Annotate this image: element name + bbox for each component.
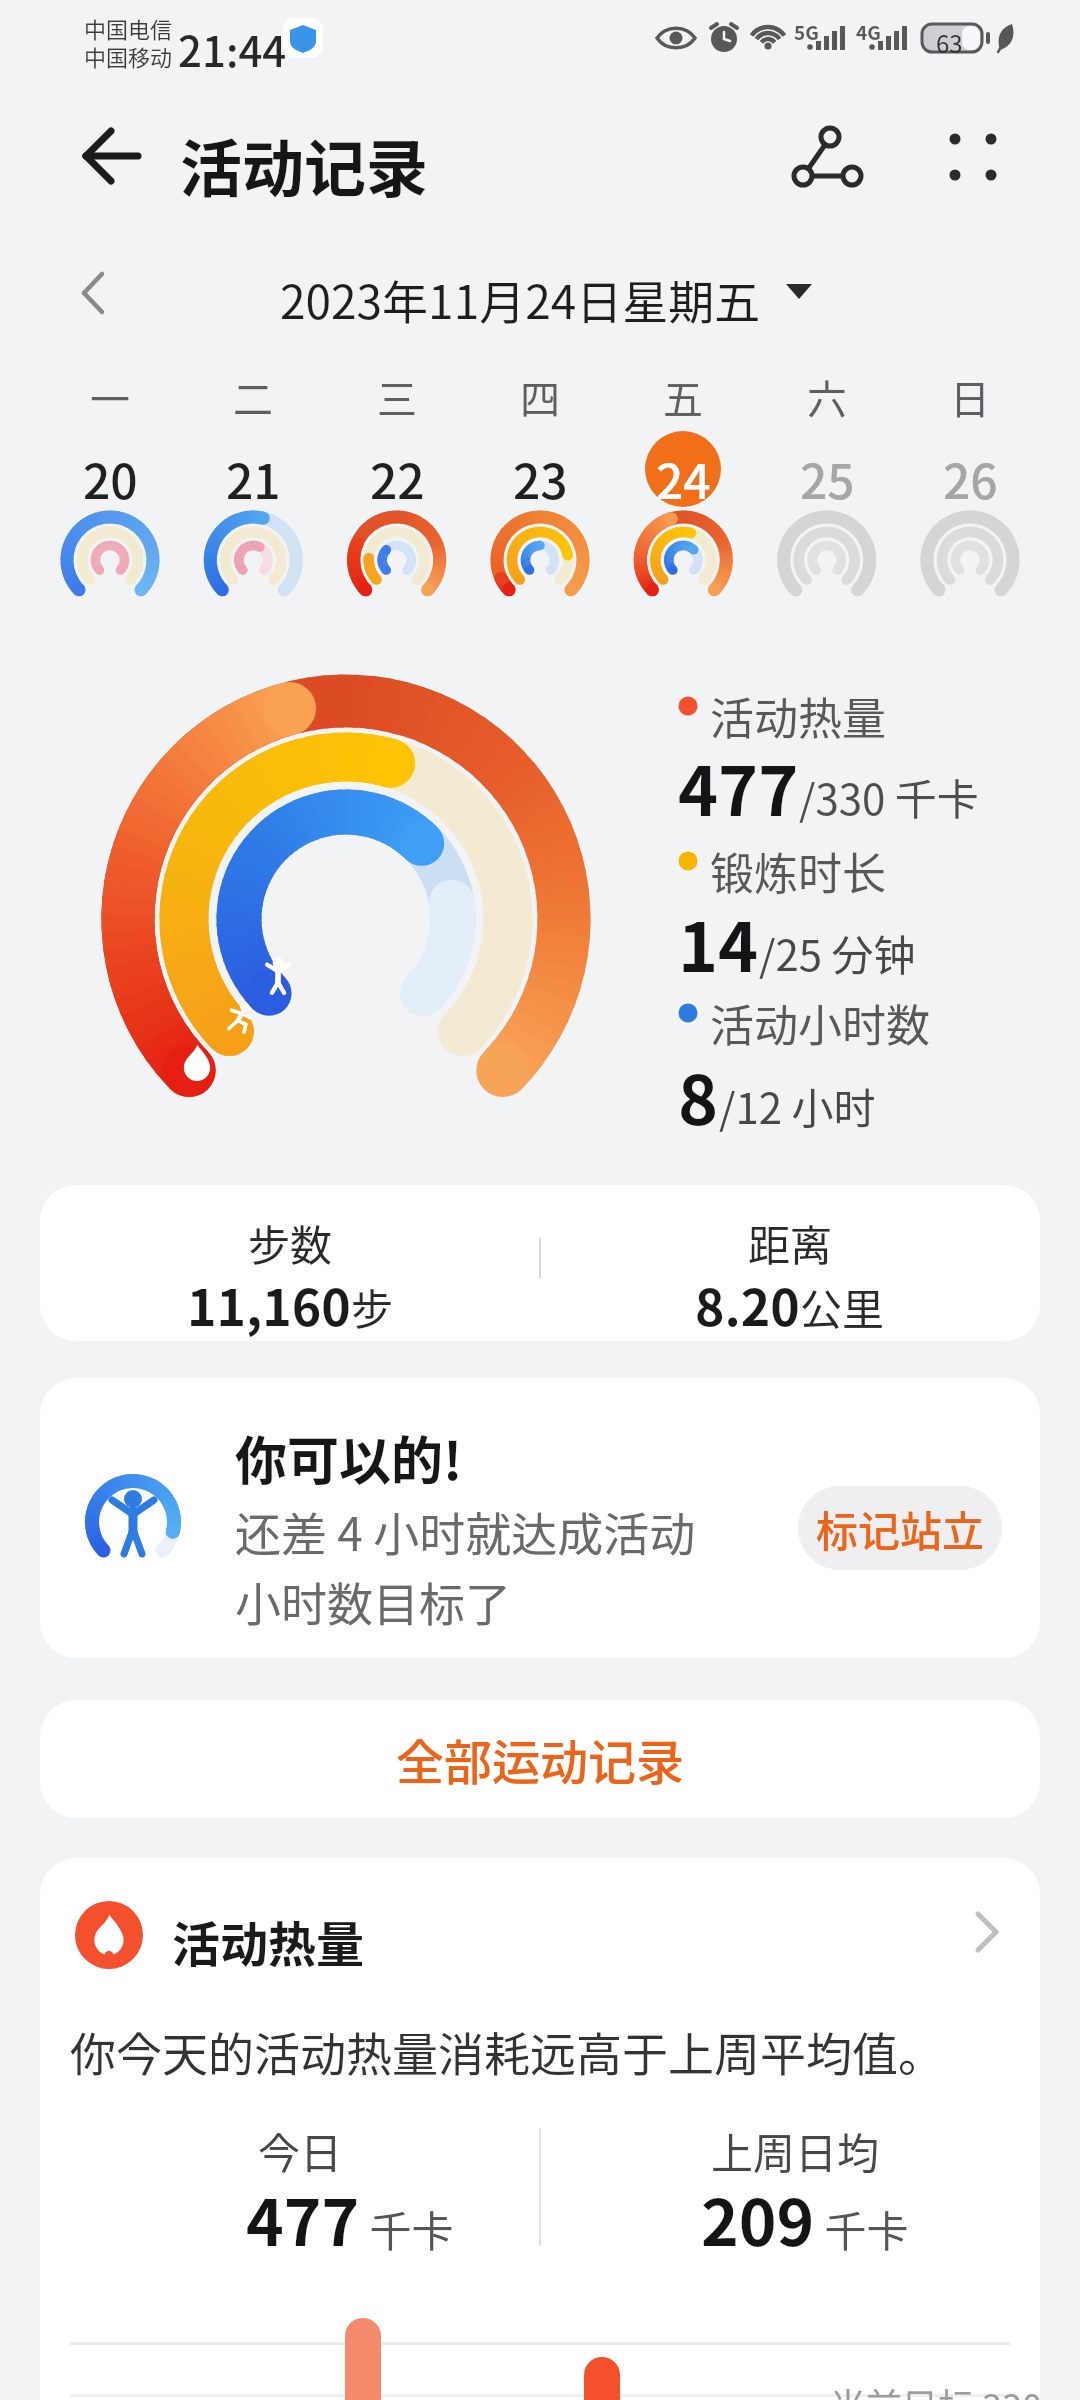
staticText: 步 [351, 1276, 394, 1337]
staticText: 21:44 [178, 18, 287, 79]
staticText: 一 [90, 368, 130, 426]
staticText: /25 分钟 [759, 922, 916, 983]
staticText: 日 [950, 368, 990, 426]
staticText: 21 [226, 443, 281, 513]
staticText: 距离 [748, 1212, 833, 1273]
button[interactable]: 25 [767, 443, 887, 513]
staticText: 当前目标 330 [830, 2378, 1043, 2400]
staticText: 千卡 [815, 2198, 909, 2259]
staticText: 25 [800, 443, 855, 513]
button[interactable]: 标记站立 [798, 1486, 1002, 1570]
button[interactable]: 26 [910, 443, 1030, 513]
staticText: 8 [678, 1046, 719, 1144]
staticText: 24 [656, 443, 711, 513]
staticText: 26 [943, 443, 998, 513]
button[interactable]: 23 [480, 443, 600, 513]
staticText: 22 [370, 443, 425, 513]
staticText: 4G [856, 18, 881, 46]
staticText: 今日 [258, 2120, 343, 2181]
staticText: /330 千卡 [799, 766, 979, 827]
staticText: 锻炼时长 [710, 839, 886, 903]
button[interactable] [40, 1870, 1040, 2000]
button[interactable]: 24 [623, 443, 743, 513]
staticText: 23 [513, 443, 568, 513]
staticText: 5G [794, 18, 819, 46]
staticText: 公里 [800, 1276, 885, 1337]
staticText: 活动热量 [172, 1906, 365, 1976]
staticText: 477 [678, 737, 799, 835]
staticText: 活动热量 [710, 684, 886, 748]
staticText: 你今天的活动热量消耗远高于上周平均值。 [70, 2018, 944, 2085]
staticText: 63 [936, 25, 963, 60]
staticText: 活动小时数 [710, 991, 930, 1055]
button[interactable] [780, 110, 880, 200]
staticText: 477 [246, 2172, 360, 2265]
staticText: 2023年11月24日星期五 [280, 266, 761, 333]
staticText: 中国移动 [84, 40, 173, 72]
staticText: 六 [807, 368, 847, 426]
staticText: 二 [233, 368, 273, 426]
staticText: 209 [701, 2172, 815, 2265]
staticText: 14 [678, 893, 759, 991]
staticText: 三 [377, 368, 417, 426]
staticText: 步数 [248, 1212, 333, 1273]
staticText: 四 [520, 368, 560, 426]
button[interactable]: 20 [50, 443, 170, 513]
staticText: 你可以的! [235, 1420, 463, 1495]
button[interactable] [930, 110, 1020, 200]
button[interactable] [40, 1700, 1040, 1818]
staticText: 五 [663, 368, 703, 426]
staticText: 上周日均 [711, 2120, 880, 2181]
staticText: 还差 4 小时就达成活动 小时数目标了 [235, 1498, 696, 1634]
staticText: 活动记录 [180, 120, 429, 210]
button[interactable]: 22 [337, 443, 457, 513]
staticText: 千卡 [360, 2198, 454, 2259]
staticText: 11,160 [187, 1268, 351, 1340]
button[interactable] [60, 115, 150, 205]
button[interactable]: 2023年11月24日星期五 [80, 266, 960, 333]
staticText: 全部运动记录 [396, 1724, 685, 1794]
staticText: 20 [83, 443, 138, 513]
button[interactable]: 21 [193, 443, 313, 513]
staticText: /12 小时 [719, 1075, 876, 1136]
button[interactable] [40, 1185, 1040, 1341]
staticText: 8.20 [695, 1268, 800, 1340]
staticText: 标记站立 [816, 1498, 985, 1559]
staticText: 中国电信 [84, 12, 173, 44]
